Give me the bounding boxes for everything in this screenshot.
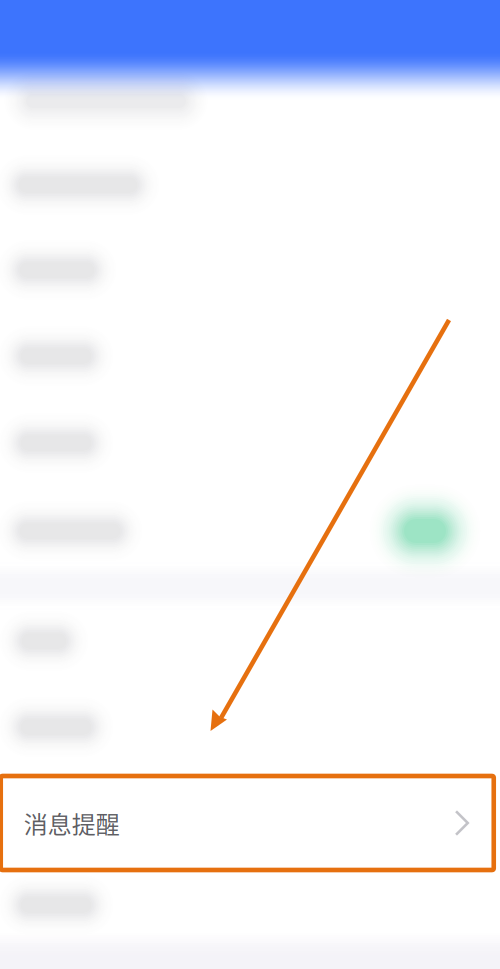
staticText: 消息提醒 [24, 806, 120, 840]
button[interactable]: 消息提醒 [1, 776, 494, 870]
